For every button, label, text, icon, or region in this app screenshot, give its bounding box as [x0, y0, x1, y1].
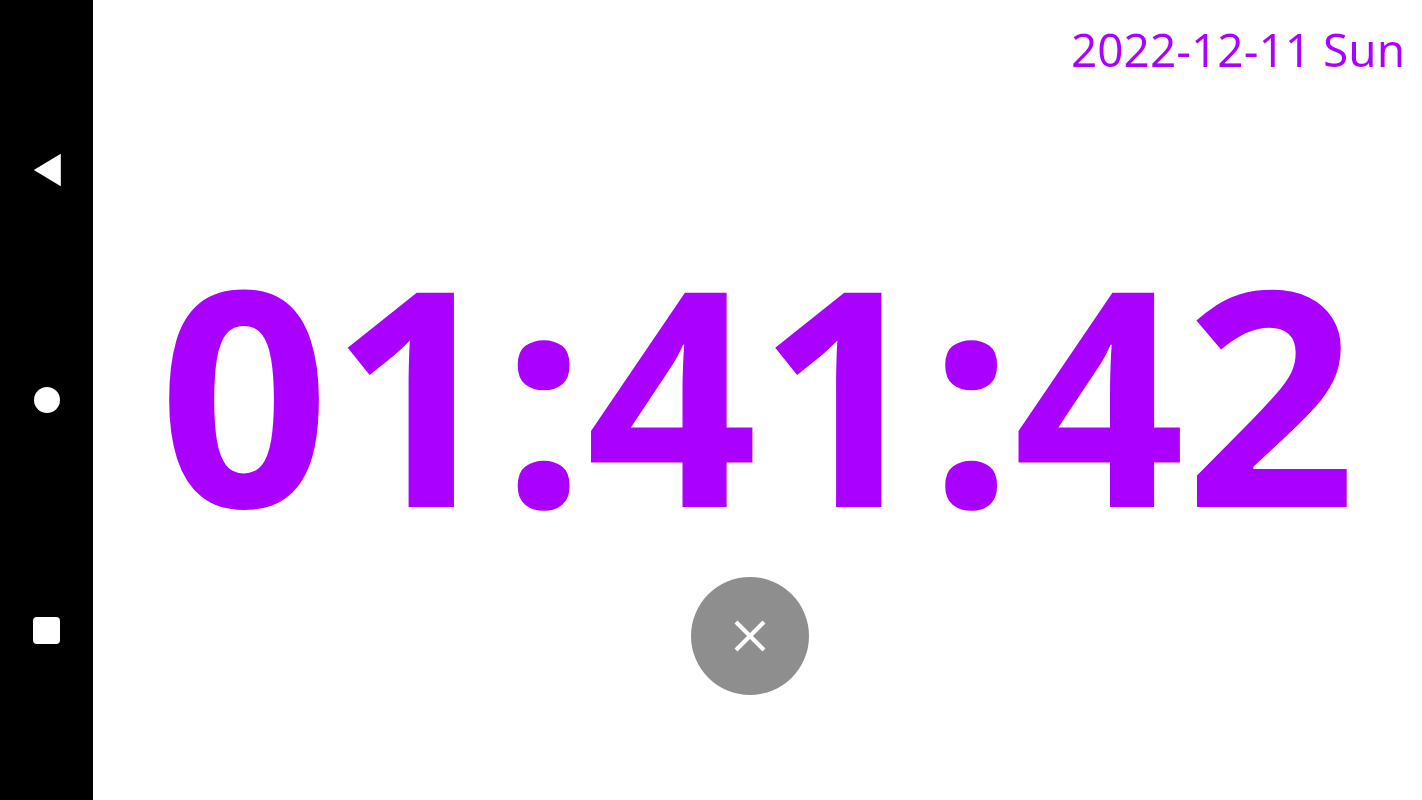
staticText: 01:41:42: [93, 186, 1422, 595]
button[interactable]: Home: [0, 362, 93, 438]
staticText: 2022-12-11 Sun: [1071, 18, 1406, 81]
button[interactable]: Stop timer: [691, 577, 809, 695]
button[interactable]: Back: [0, 130, 93, 210]
button[interactable]: Recent apps: [0, 592, 93, 668]
